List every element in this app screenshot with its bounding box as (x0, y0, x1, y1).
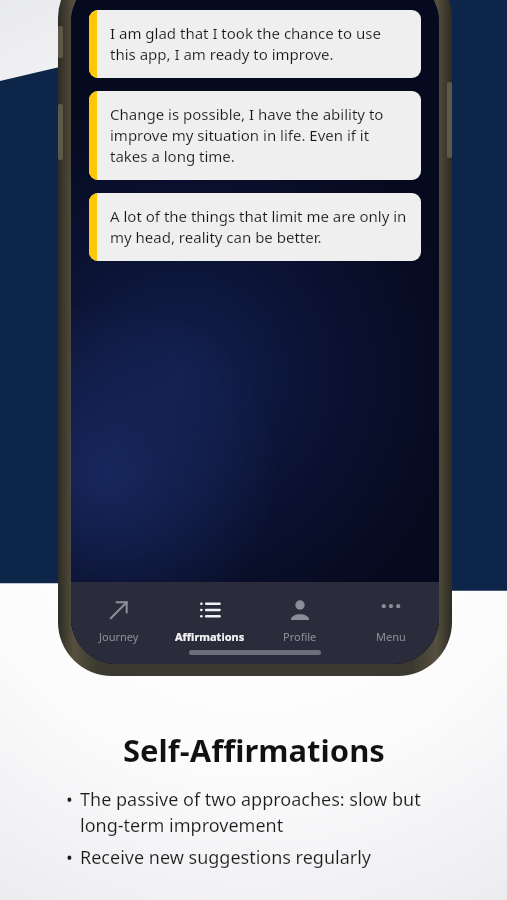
staticText: A lot of the things that limit me are on… (110, 206, 408, 248)
staticText: Self-Affirmations (123, 729, 385, 771)
staticText: • (66, 845, 73, 870)
button[interactable]: Change is possible, I have the ability t… (89, 91, 421, 180)
button[interactable]: Profile (258, 595, 342, 647)
staticText: I am glad that I took the chance to use … (110, 23, 408, 65)
button[interactable]: Menu (349, 595, 433, 647)
other: Journey (107, 598, 131, 622)
staticText: Change is possible, I have the ability t… (110, 104, 408, 167)
staticText: The passive of two approaches: slow but … (80, 787, 421, 838)
button[interactable]: Journey (77, 595, 161, 647)
other: Profile (288, 598, 312, 622)
button[interactable]: Affirmations (168, 595, 252, 647)
other: Affirmations (198, 598, 222, 622)
button[interactable]: I am glad that I took the chance to use … (89, 10, 421, 78)
staticText: • (66, 787, 73, 812)
staticText: Receive new suggestions regularly (80, 845, 372, 870)
button[interactable]: A lot of the things that limit me are on… (89, 193, 421, 261)
staticText: Journey (99, 629, 139, 644)
staticText: Affirmations (175, 629, 245, 644)
other: Menu (379, 598, 403, 622)
staticText: Profile (283, 629, 317, 644)
staticText: Menu (376, 629, 406, 644)
